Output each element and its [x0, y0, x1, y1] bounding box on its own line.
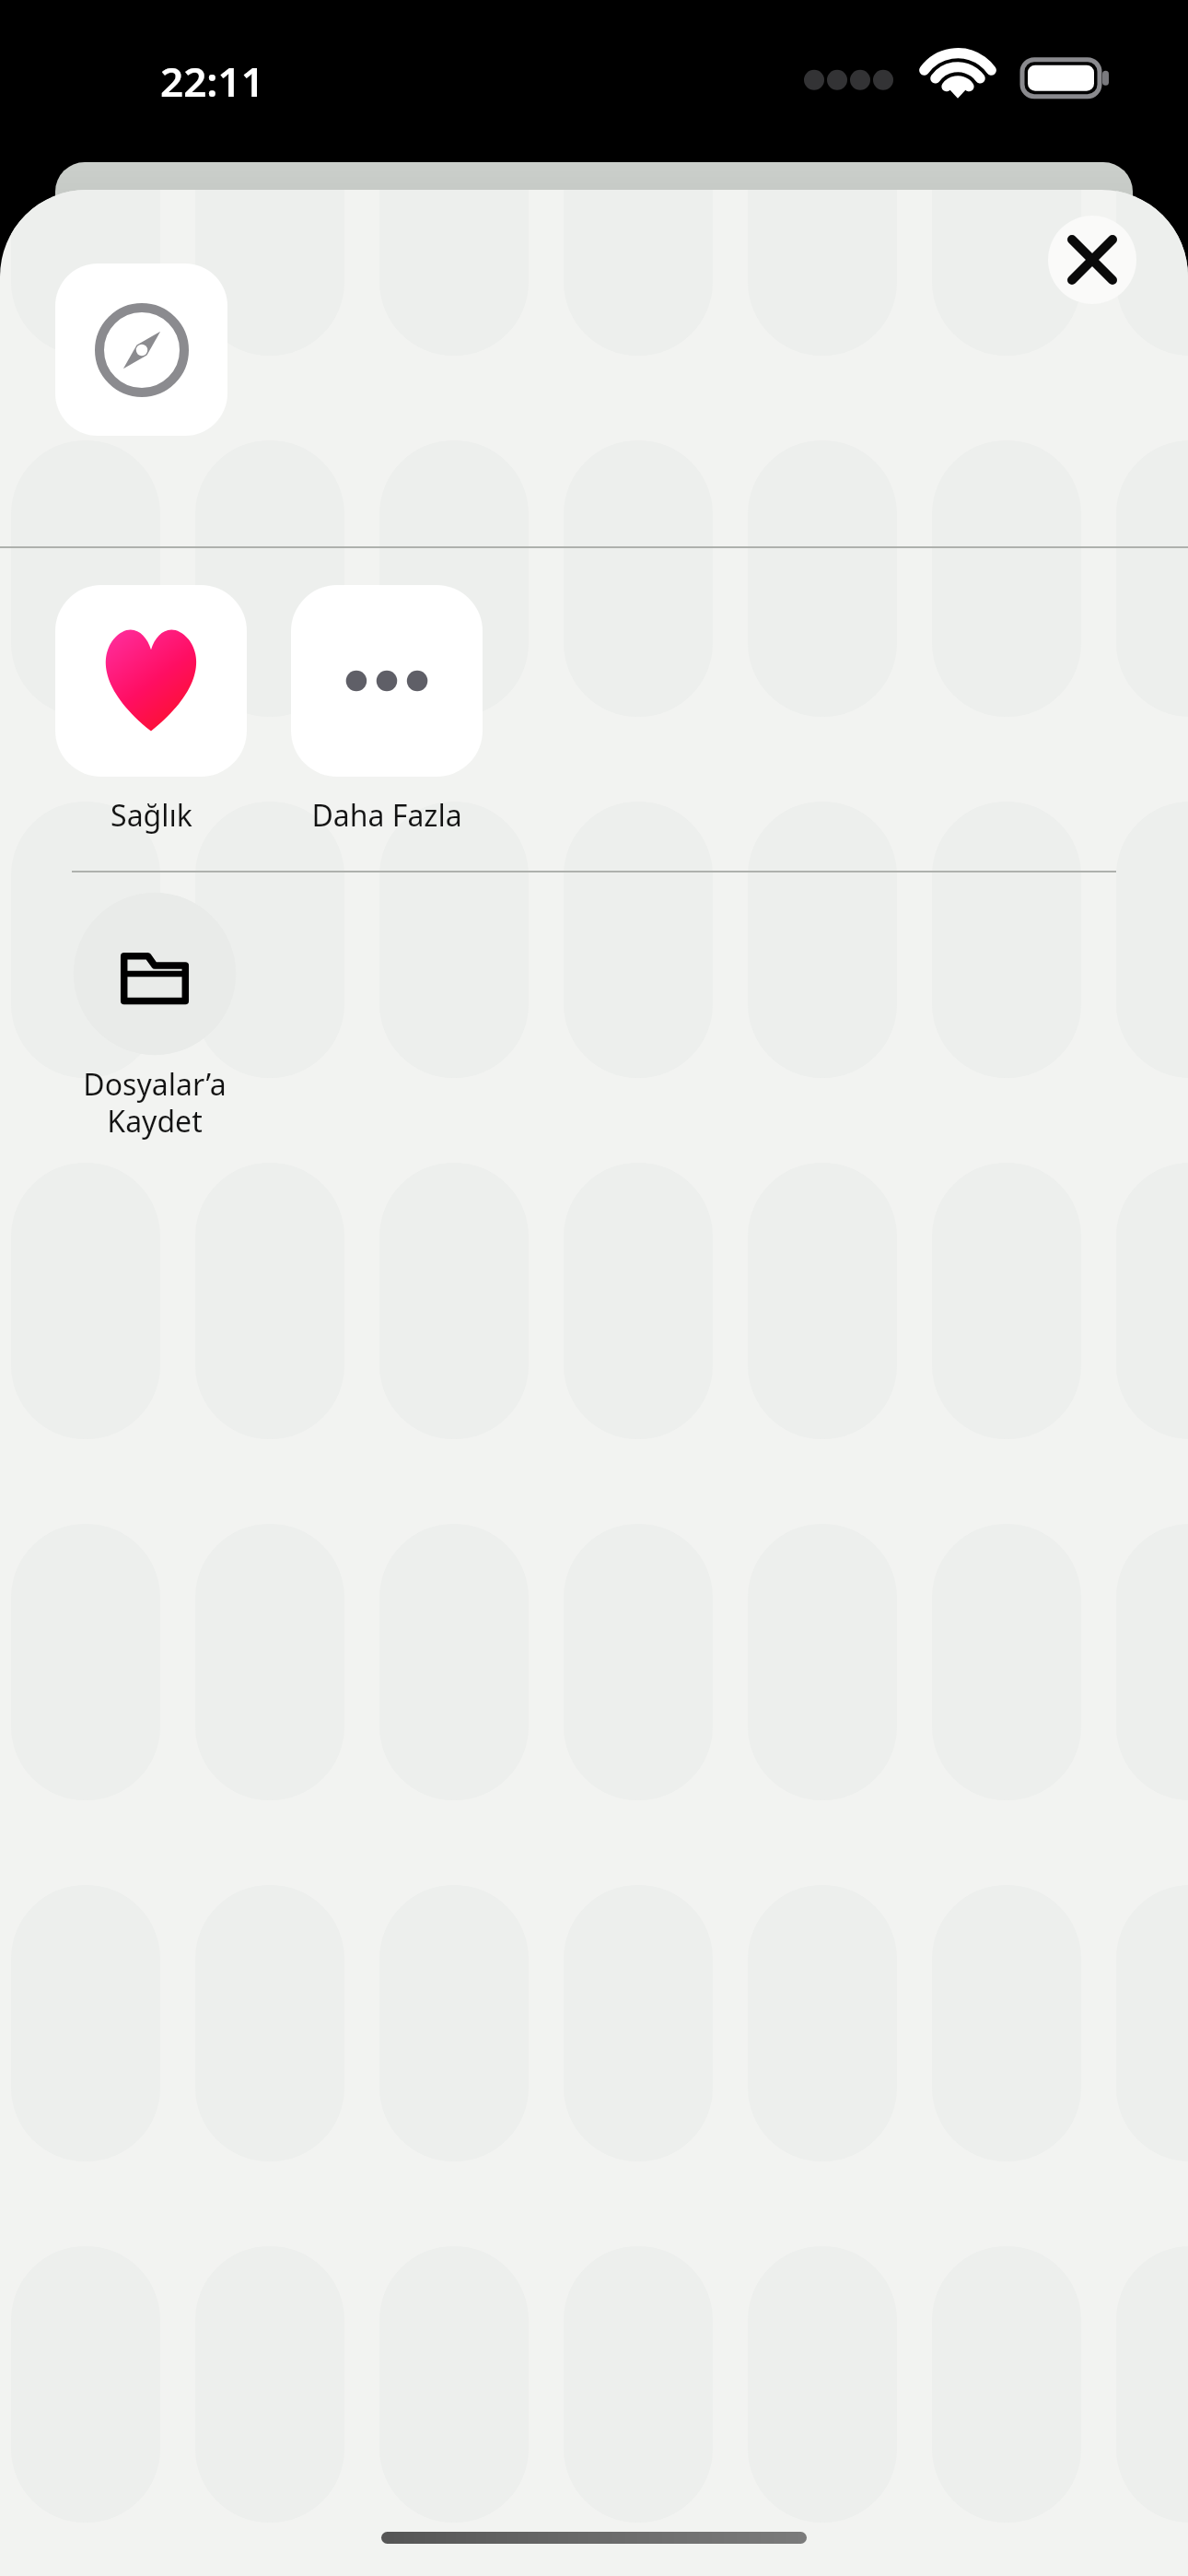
staticText: 22:11 [160, 53, 264, 109]
staticText: Daha Fazla [311, 795, 462, 836]
staticText: Sağlık [111, 795, 192, 836]
button[interactable]: Daha Fazla [289, 585, 484, 836]
button[interactable]: Safari [55, 263, 227, 436]
button[interactable]: Sağlık [53, 585, 249, 836]
staticText: Dosyalar’a Kaydet [83, 1064, 227, 1142]
button[interactable]: Dosyalar’a Kaydet [33, 884, 276, 1142]
button[interactable]: Kapat [1048, 216, 1136, 304]
